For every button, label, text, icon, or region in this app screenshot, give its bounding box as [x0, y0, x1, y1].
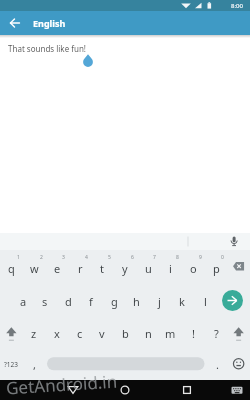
staticText: q: [8, 261, 15, 276]
staticText: 9: [199, 254, 202, 261]
button[interactable]: s: [29, 288, 61, 314]
button[interactable]: a: [7, 288, 39, 314]
staticText: 5: [108, 254, 111, 261]
staticText: 6: [131, 254, 134, 261]
staticText: English: [33, 17, 66, 29]
staticText: x: [54, 326, 60, 341]
button[interactable]: 5: [93, 244, 125, 270]
button[interactable]: [47, 357, 204, 370]
staticText: i: [169, 261, 172, 276]
button[interactable]: m: [154, 320, 186, 346]
button[interactable]: [221, 284, 244, 315]
button[interactable]: ,: [18, 351, 50, 377]
staticText: 4: [85, 254, 88, 261]
staticText: 3: [62, 254, 65, 261]
button[interactable]: z: [18, 320, 50, 346]
button[interactable]: x: [41, 320, 73, 346]
button[interactable]: [177, 380, 197, 400]
staticText: 8: [176, 254, 179, 261]
staticText: r: [78, 261, 83, 276]
button[interactable]: [227, 250, 250, 282]
staticText: z: [31, 326, 37, 341]
staticText: l: [204, 294, 207, 309]
button[interactable]: k: [166, 288, 198, 314]
staticText: n: [145, 326, 152, 341]
staticText: c: [77, 326, 83, 341]
button[interactable]: n: [132, 320, 164, 346]
staticText: f: [89, 294, 93, 309]
staticText: 7: [153, 254, 156, 261]
button[interactable]: f: [75, 288, 107, 314]
staticText: ?: [214, 326, 219, 341]
button[interactable]: ?123: [0, 351, 27, 377]
button[interactable]: 0: [206, 244, 238, 270]
staticText: w: [30, 261, 39, 276]
staticText: GetAndroid.in: [5, 370, 119, 399]
staticText: That sounds like fun!: [8, 43, 87, 54]
staticText: 1: [17, 254, 20, 261]
button[interactable]: [0, 11, 24, 35]
button[interactable]: !: [177, 320, 209, 346]
staticText: y: [122, 261, 128, 276]
staticText: o: [190, 261, 197, 276]
button[interactable]: English: [0, 11, 250, 35]
button[interactable]: d: [52, 288, 84, 314]
button[interactable]: 4: [70, 244, 102, 270]
button[interactable]: [0, 316, 23, 348]
button[interactable]: i: [154, 255, 186, 281]
staticText: h: [133, 294, 140, 309]
button[interactable]: 1: [2, 244, 34, 270]
button[interactable]: r: [64, 255, 96, 281]
staticText: j: [158, 294, 161, 309]
button[interactable]: g: [98, 288, 130, 314]
staticText: p: [213, 261, 220, 276]
button[interactable]: 9: [184, 244, 216, 270]
staticText: e: [54, 261, 61, 276]
staticText: 0: [221, 254, 224, 261]
button[interactable]: q: [0, 255, 27, 281]
staticText: s: [42, 294, 48, 309]
button[interactable]: [227, 380, 247, 400]
button[interactable]: j: [143, 288, 175, 314]
button[interactable]: h: [120, 288, 152, 314]
staticText: d: [65, 294, 72, 309]
button[interactable]: .: [201, 351, 233, 377]
staticText: 2: [40, 254, 43, 261]
button[interactable]: l: [189, 288, 221, 314]
button[interactable]: c: [64, 320, 96, 346]
staticText: b: [122, 326, 129, 341]
staticText: a: [20, 294, 27, 309]
button[interactable]: 6: [116, 244, 148, 270]
button[interactable]: 8: [161, 244, 193, 270]
button[interactable]: 3: [47, 244, 79, 270]
staticText: g: [111, 294, 118, 309]
staticText: m: [165, 326, 176, 341]
staticText: ,: [33, 357, 36, 372]
button[interactable]: u: [132, 255, 164, 281]
button[interactable]: e: [41, 255, 73, 281]
button[interactable]: [227, 348, 250, 379]
staticText: ?123: [4, 360, 18, 369]
button[interactable]: [63, 380, 83, 400]
button[interactable]: b: [109, 320, 141, 346]
button[interactable]: ?: [200, 320, 232, 346]
staticText: u: [145, 261, 152, 276]
staticText: k: [179, 294, 185, 309]
staticText: .: [216, 357, 219, 372]
button[interactable]: y: [109, 255, 141, 281]
button[interactable]: w: [18, 255, 50, 281]
button[interactable]: [115, 380, 135, 400]
button[interactable]: [0, 233, 250, 250]
button[interactable]: 2: [25, 244, 57, 270]
button[interactable]: p: [200, 255, 232, 281]
staticText: t: [100, 261, 104, 276]
button[interactable]: o: [177, 255, 209, 281]
button[interactable]: [227, 316, 250, 348]
button[interactable]: v: [86, 320, 118, 346]
staticText: !: [192, 326, 195, 341]
button[interactable]: t: [86, 255, 118, 281]
staticText: 8:00: [231, 2, 243, 10]
staticText: v: [99, 326, 105, 341]
button[interactable]: [227, 234, 242, 249]
button[interactable]: 7: [138, 244, 170, 270]
